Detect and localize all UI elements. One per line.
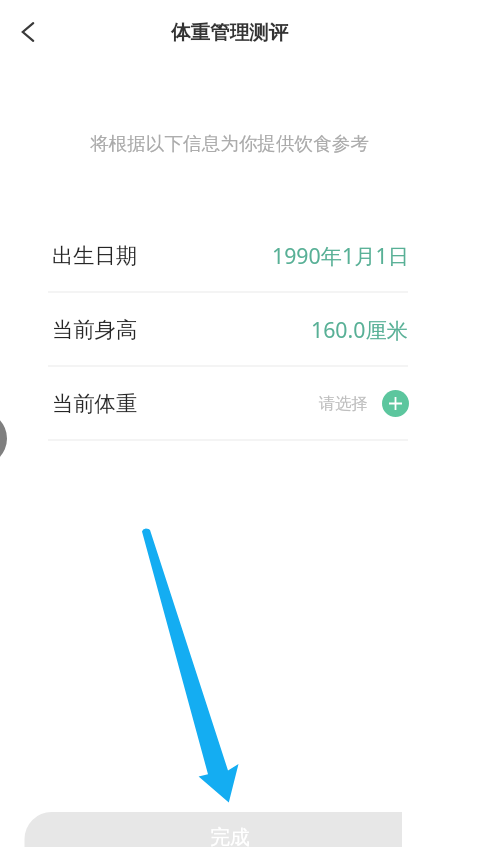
button[interactable]: Back xyxy=(4,8,52,56)
staticText: 请选择 xyxy=(319,393,368,414)
button[interactable]: 出生日期 xyxy=(0,218,409,292)
staticText: 体重管理测评 xyxy=(171,20,288,45)
staticText: 出生日期 xyxy=(52,242,138,269)
staticText: 1990年1月1日 xyxy=(272,241,409,270)
button[interactable]: Add current weight xyxy=(382,390,409,417)
staticText: 将根据以下信息为你提供饮食参考 xyxy=(90,132,369,155)
staticText: 当前体重 xyxy=(52,390,138,417)
staticText: 当前身高 xyxy=(52,316,138,343)
button[interactable]: 当前体重 xyxy=(0,366,409,440)
button[interactable]: 当前身高 xyxy=(0,292,409,366)
button[interactable]: 完成 xyxy=(0,812,402,847)
staticText: 160.0厘米 xyxy=(311,315,409,344)
staticText: 完成 xyxy=(210,825,250,847)
